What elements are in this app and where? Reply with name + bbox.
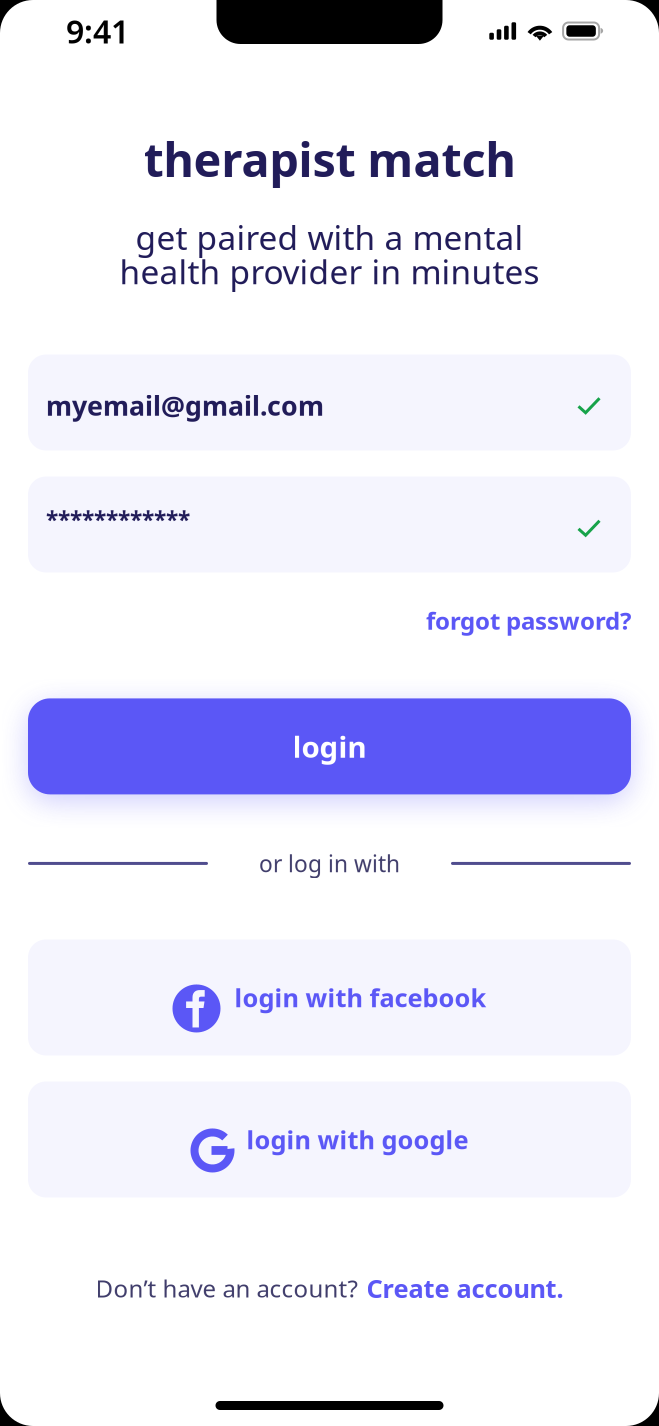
staticText: get paired with a mental [135,215,523,259]
button[interactable]: login [28,698,631,794]
button[interactable]: Create account. [366,1271,563,1305]
staticText: ************ [46,504,190,535]
button[interactable]: ************ [28,476,631,572]
staticText: therapist match [143,128,515,190]
staticText: health provider in minutes [119,249,539,293]
staticText: login [292,727,366,766]
button[interactable]: login with facebook [28,939,631,1055]
button[interactable]: myemail@gmail.com [28,354,631,450]
staticText: or log in with [259,848,400,878]
button[interactable]: forgot password? [426,604,631,636]
staticText: myemail@gmail.com [46,388,324,423]
staticText: Don’t have an account? [95,1272,357,1304]
button[interactable]: login with google [28,1081,631,1197]
staticText: forgot password? [426,604,631,636]
staticText: login with google [246,1123,468,1156]
staticText: login with facebook [234,981,486,1014]
staticText: 9:41 [66,10,129,52]
staticText: Create account. [366,1271,563,1305]
